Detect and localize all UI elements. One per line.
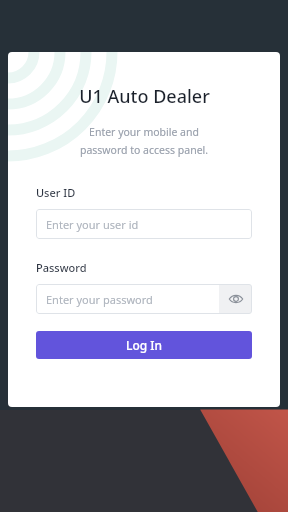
staticText: Log In xyxy=(126,337,163,353)
staticText: Password xyxy=(36,260,87,275)
button[interactable]: Enter your user id xyxy=(36,209,252,239)
staticText: Enter your mobile and password to access… xyxy=(36,125,252,157)
staticText: Enter your user id xyxy=(46,217,139,232)
button[interactable]: Enter your password xyxy=(36,284,219,314)
staticText: Enter your password xyxy=(46,292,153,307)
button[interactable]: Log In xyxy=(36,331,252,359)
staticText: U1 Auto Dealer xyxy=(79,84,210,109)
staticText: User ID xyxy=(36,185,76,200)
button[interactable]: Show password xyxy=(219,284,252,314)
